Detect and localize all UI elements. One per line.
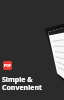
staticText: Simple & Convenient xyxy=(2,75,43,92)
button[interactable]: PDF xyxy=(3,61,12,70)
staticText: PDF xyxy=(4,63,11,68)
